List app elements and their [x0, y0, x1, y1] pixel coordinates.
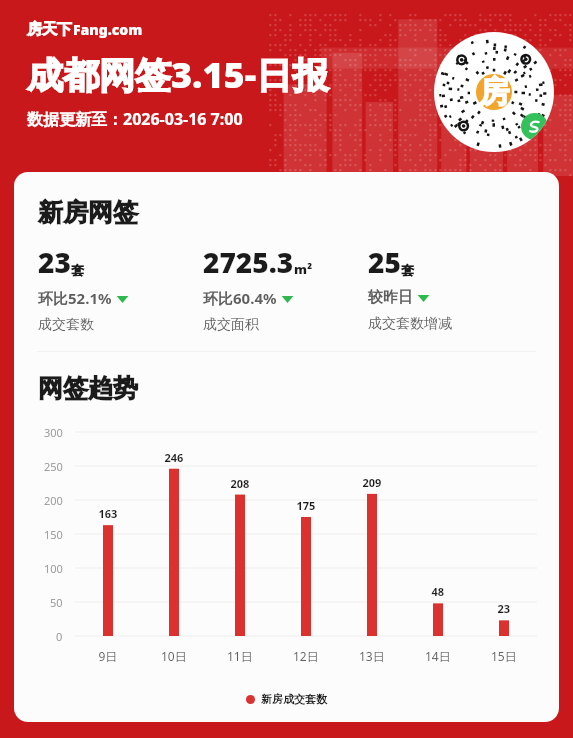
- staticText: 成交套数增减: [368, 315, 452, 333]
- staticText: 较昨日: [368, 288, 413, 307]
- staticText: 数据更新至：2026-03-16 7:00: [27, 108, 243, 130]
- staticText: 套: [401, 262, 414, 278]
- staticText: 套: [71, 262, 84, 278]
- staticText: 新房成交套数: [261, 692, 327, 706]
- staticText: 网签趋势: [38, 373, 138, 404]
- button[interactable]: 25: [368, 243, 538, 333]
- button[interactable]: 扫描二维码打开小程序: [434, 32, 554, 152]
- staticText: 环比60.4%: [203, 288, 277, 308]
- staticText: 23: [38, 243, 71, 281]
- button[interactable]: 23: [38, 243, 203, 334]
- staticText: 房天下: [27, 20, 72, 39]
- staticText: 成交面积: [203, 316, 259, 334]
- staticText: Fang.com: [73, 20, 143, 39]
- staticText: 成交套数: [38, 316, 94, 334]
- staticText: m²: [294, 260, 313, 278]
- staticText: 新房网签: [38, 197, 138, 228]
- staticText: 房: [479, 73, 509, 111]
- staticText: 2725.3: [203, 243, 294, 281]
- staticText: 25: [368, 243, 401, 281]
- button[interactable]: 2725.3: [203, 243, 368, 334]
- staticText: 成都网签3.15-日报: [27, 50, 329, 99]
- staticText: 环比52.1%: [38, 288, 112, 308]
